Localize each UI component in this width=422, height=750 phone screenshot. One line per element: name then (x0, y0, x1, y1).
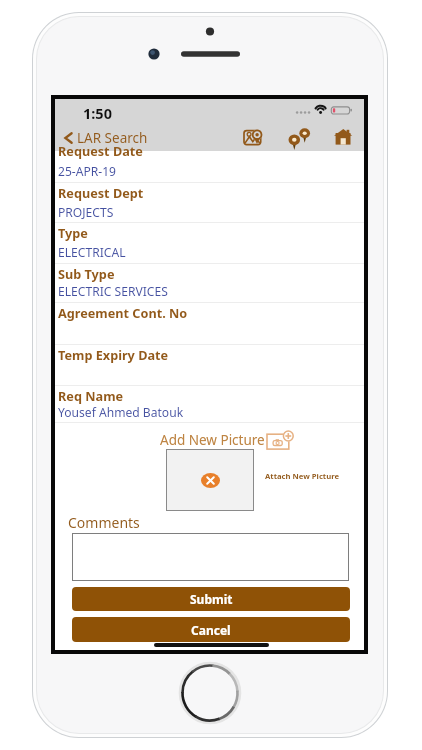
button[interactable]: Temp Expiry Date (55, 345, 364, 385)
staticText: Comments (68, 513, 140, 532)
staticText: Temp Expiry Date (58, 346, 169, 363)
button[interactable]: Map photos (241, 126, 265, 150)
staticText: Type (58, 224, 88, 241)
button[interactable]: Request Dept (55, 183, 364, 223)
staticText: 25-APR-19 (58, 163, 117, 179)
button[interactable]: Home (331, 126, 355, 150)
staticText: LAR Search (77, 129, 148, 147)
button[interactable]: Locations (286, 126, 310, 150)
button[interactable]: Agreement Cont. No (55, 303, 364, 344)
button[interactable]: Req Name (55, 386, 364, 423)
staticText: Sub Type (58, 265, 115, 282)
staticText: ELECTRIC SERVICES (58, 283, 168, 299)
staticText: Submit (190, 591, 233, 607)
staticText: Yousef Ahmed Batouk (58, 404, 184, 420)
staticText: 1:50 (83, 103, 112, 123)
button[interactable]: Add new picture (264, 427, 296, 451)
button[interactable]: Request Date (55, 151, 364, 182)
staticText: ELECTRICAL (58, 244, 126, 260)
button[interactable]: LAR Search (55, 126, 154, 150)
staticText: Add New Picture (160, 431, 265, 449)
button[interactable]: Cancel (72, 617, 350, 642)
button[interactable]: Submit (72, 587, 350, 611)
button[interactable]: Sub Type (55, 264, 364, 302)
staticText: Attach New Picture (265, 471, 340, 481)
staticText: Agreement Cont. No (58, 304, 188, 321)
staticText: Cancel (191, 622, 231, 638)
button[interactable]: Type (55, 223, 364, 263)
staticText: Request Dept (58, 184, 144, 201)
staticText: PROJECTS (58, 204, 114, 220)
staticText: Request Date (58, 142, 143, 159)
staticText: Req Name (58, 387, 124, 404)
